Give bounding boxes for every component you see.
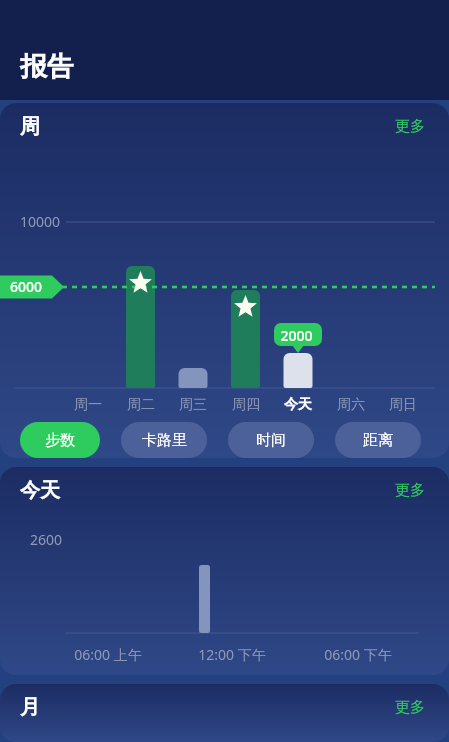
button[interactable]: 周六 <box>325 396 377 414</box>
button[interactable]: 周一 <box>62 396 114 414</box>
staticText: 10000 <box>20 212 61 231</box>
staticText: 6000 <box>10 277 43 296</box>
button[interactable]: 更多 <box>391 477 429 504</box>
staticText: 周四 <box>232 396 260 414</box>
staticText: 卡路里 <box>142 431 187 450</box>
button[interactable]: 今天 <box>272 396 324 414</box>
button[interactable]: 步数 <box>20 422 100 458</box>
staticText: 2600 <box>30 530 63 549</box>
staticText: 周二 <box>127 396 155 414</box>
staticText: 更多 <box>395 117 425 136</box>
staticText: 12:00 下午 <box>198 645 266 664</box>
staticText: 06:00 上午 <box>74 645 142 664</box>
staticText: 步数 <box>45 431 75 450</box>
button[interactable]: 时间 <box>228 422 314 458</box>
staticText: 更多 <box>395 481 425 500</box>
staticText: 周 <box>20 114 40 139</box>
staticText: 距离 <box>363 431 393 450</box>
staticText: 更多 <box>395 698 425 717</box>
button[interactable]: 更多 <box>391 694 429 721</box>
staticText: 周一 <box>74 396 102 414</box>
button[interactable]: 周四 <box>220 396 272 414</box>
staticText: 报告 <box>20 50 74 84</box>
staticText: 月 <box>20 695 40 720</box>
staticText: 时间 <box>256 431 286 450</box>
staticText: 周六 <box>337 396 365 414</box>
staticText: 2000 <box>280 326 313 345</box>
button[interactable]: 更多 <box>391 113 429 140</box>
staticText: 周日 <box>389 396 417 414</box>
button[interactable]: 距离 <box>335 422 421 458</box>
button[interactable]: 周二 <box>115 396 167 414</box>
staticText: 06:00 下午 <box>324 645 392 664</box>
staticText: 今天 <box>20 478 60 503</box>
button[interactable]: 周三 <box>167 396 219 414</box>
button[interactable]: 卡路里 <box>121 422 207 458</box>
staticText: 周三 <box>179 396 207 414</box>
staticText: 今天 <box>284 396 312 414</box>
button[interactable]: 周日 <box>377 396 429 414</box>
